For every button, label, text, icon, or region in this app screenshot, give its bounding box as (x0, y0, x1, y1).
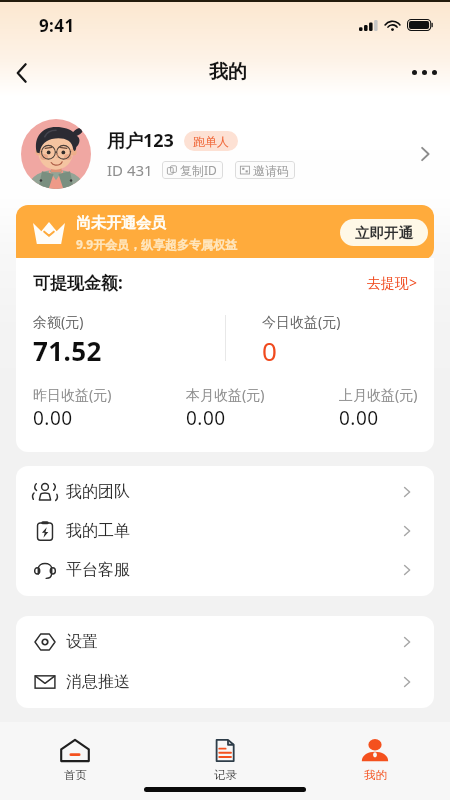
button[interactable]: 设置 (16, 622, 434, 662)
staticText: 设置 (66, 632, 98, 652)
staticText: 平台客服 (66, 560, 130, 580)
staticText: 昨日收益(元) (33, 385, 112, 404)
button[interactable]: 记录 (150, 722, 300, 780)
button[interactable]: Back (0, 49, 46, 95)
staticText: 余额(元) (33, 312, 84, 331)
staticText: 用户123 (107, 128, 174, 153)
staticText: 本月收益(元) (186, 385, 265, 404)
staticText: 跑单人 (193, 134, 229, 149)
staticText: 0.00 (186, 405, 226, 431)
staticText: 尚未开通会员 (76, 214, 166, 233)
button[interactable]: 复制ID (162, 161, 223, 179)
staticText: ID 431 (107, 160, 153, 180)
staticText: 0.00 (339, 405, 379, 431)
staticText: 消息推送 (66, 672, 130, 692)
button[interactable]: 消息推送 (16, 662, 434, 702)
button[interactable]: 去提现> (367, 273, 418, 292)
button[interactable]: 平台客服 (16, 550, 434, 589)
staticText: 9.9开会员，纵享超多专属权益 (76, 236, 238, 252)
staticText: 我的工单 (66, 521, 130, 541)
staticText: 71.52 (33, 333, 102, 364)
staticText: 邀请码 (253, 163, 289, 178)
staticText: 我的 (209, 60, 247, 84)
button[interactable]: 立即开通 (340, 219, 428, 246)
staticText: 我的 (364, 768, 387, 780)
staticText: 0 (262, 333, 277, 364)
button[interactable]: 我的工单 (16, 511, 434, 550)
staticText: 9:41 (39, 14, 75, 37)
staticText: 我的团队 (66, 482, 130, 502)
staticText: 去提现> (367, 273, 418, 292)
staticText: 上月收益(元) (339, 385, 418, 404)
button[interactable]: 首页 (0, 722, 150, 780)
button[interactable]: 邀请码 (235, 161, 295, 179)
button[interactable]: 尚未开通会员 (16, 205, 434, 260)
staticText: 首页 (64, 768, 87, 780)
button[interactable]: 我的团队 (16, 472, 434, 511)
button[interactable]: 用户123 (0, 119, 450, 189)
button[interactable]: 我的 (300, 722, 450, 780)
staticText: 记录 (214, 768, 237, 780)
button[interactable]: More options (401, 49, 447, 95)
staticText: 复制ID (180, 162, 217, 178)
staticText: 今日收益(元) (262, 312, 341, 331)
staticText: 可提现金额: (33, 271, 123, 294)
staticText: 立即开通 (355, 224, 413, 242)
staticText: 0.00 (33, 405, 73, 431)
